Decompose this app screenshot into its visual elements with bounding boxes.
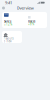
staticText: +12% — [4, 23, 12, 26]
staticText: 3 new — [4, 40, 12, 43]
button[interactable]: Sales — [4, 16, 12, 26]
button[interactable]: Payouts — [2, 31, 22, 43]
staticText: Sales — [4, 20, 11, 23]
staticText: +8% — [28, 23, 34, 26]
staticText: 9:41 — [5, 0, 12, 5]
staticText: Overview — [16, 5, 33, 11]
button[interactable]: Account — [2, 6, 5, 9]
button[interactable]: Users — [28, 16, 35, 26]
staticText: Users — [28, 20, 35, 23]
staticText: Payouts — [4, 37, 14, 40]
